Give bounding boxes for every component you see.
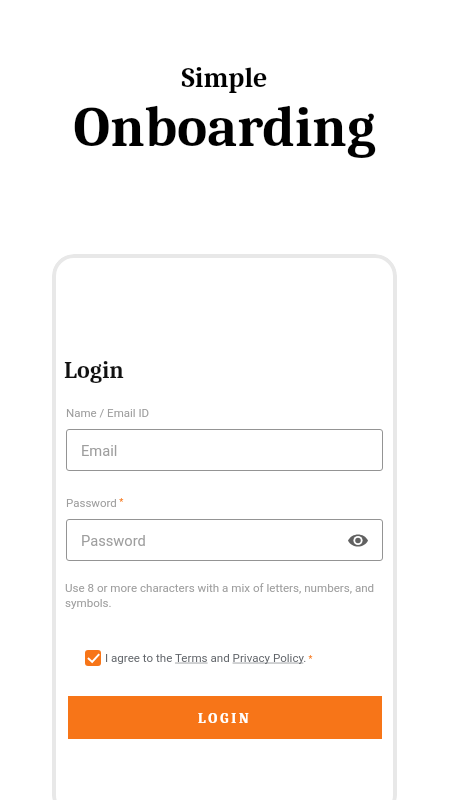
staticText: Name / Email ID: [66, 406, 150, 419]
button[interactable]: Email: [66, 429, 383, 471]
button[interactable]: Password: [66, 519, 383, 561]
staticText: *: [117, 496, 124, 507]
button[interactable]: LOGIN: [68, 696, 382, 739]
staticText: Password: [66, 496, 117, 509]
button[interactable]: I agree to the Terms and Privacy Policy.…: [85, 650, 313, 666]
staticText: Onboarding: [0, 95, 449, 161]
staticText: I agree to the Terms and Privacy Policy.…: [105, 651, 313, 665]
button[interactable]: Show password: [345, 527, 371, 553]
staticText: Login: [64, 356, 124, 384]
staticText: Simple: [0, 62, 449, 94]
staticText: LOGIN: [198, 710, 252, 726]
staticText: Email: [81, 442, 118, 459]
staticText: Password: [81, 532, 146, 549]
staticText: Use 8 or more characters with a mix of l…: [65, 581, 375, 610]
